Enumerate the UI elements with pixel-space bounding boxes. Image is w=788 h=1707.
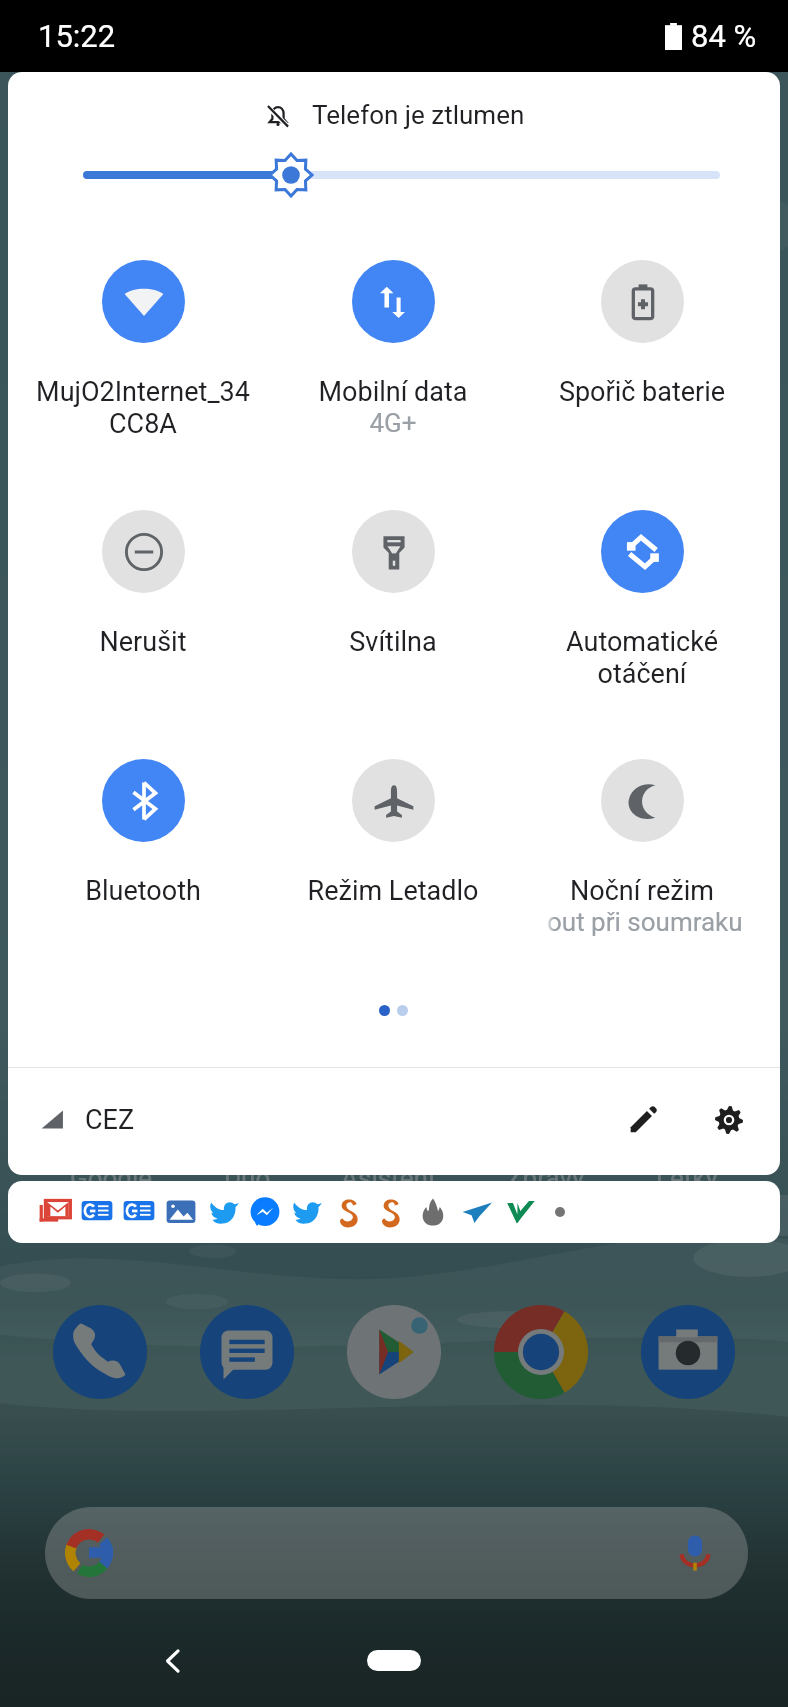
button[interactable]: Noční režim — [511, 759, 773, 959]
staticText: Zprávy — [507, 1163, 585, 1193]
button[interactable]: Fotoaparát — [639, 1303, 737, 1401]
button[interactable]: Zprávy — [198, 1303, 296, 1401]
button[interactable]: Play Store — [345, 1303, 443, 1401]
staticText: Režim Letadlo — [262, 875, 524, 907]
staticText: Noční režim — [511, 875, 773, 907]
button[interactable]: MujO2Internet_34 CC8A — [12, 260, 274, 460]
staticText: 15:22 — [38, 18, 116, 54]
staticText: Telefon je ztlumen — [312, 100, 525, 130]
button[interactable]: Hledat Googlem — [45, 1507, 748, 1599]
staticText: Duo — [224, 1163, 271, 1193]
staticText: 84 % — [691, 18, 757, 54]
button[interactable]: Svítilna — [262, 510, 524, 710]
staticText: Bluetooth — [12, 875, 274, 907]
staticText: Nerušit — [12, 626, 274, 658]
button[interactable]: Chrome — [492, 1303, 590, 1401]
button[interactable]: Režim Letadlo — [262, 759, 524, 959]
button[interactable]: CEZ — [40, 1104, 135, 1136]
button[interactable]: Domů — [367, 1650, 421, 1671]
staticText: CEZ — [85, 1104, 135, 1136]
button[interactable]: Nastavení — [699, 1092, 759, 1148]
button[interactable]: Nerušit — [12, 510, 274, 710]
staticText: Asistent — [341, 1163, 437, 1193]
staticText: Spořič baterie — [511, 376, 773, 408]
button[interactable]: Telefon — [51, 1303, 149, 1401]
staticText: Letky — [656, 1163, 718, 1193]
staticText: out při soumraku — [547, 907, 743, 937]
button[interactable]: Spořič baterie — [511, 260, 773, 460]
button[interactable]: Oznámení — [8, 1181, 780, 1243]
button[interactable]: Upravit — [613, 1092, 673, 1148]
button[interactable]: Mobilní data — [262, 260, 524, 460]
button[interactable]: Bluetooth — [12, 759, 274, 959]
staticText: Google — [70, 1163, 153, 1193]
staticText: Svítilna — [262, 626, 524, 658]
staticText: 4G+ — [262, 408, 524, 438]
staticText: Mobilní data — [262, 376, 524, 408]
staticText: MujO2Internet_34 CC8A — [12, 376, 274, 439]
button[interactable]: Zpět — [152, 1640, 194, 1682]
button[interactable]: Automatické otáčení — [511, 510, 773, 710]
staticText: Automatické otáčení — [511, 626, 773, 689]
